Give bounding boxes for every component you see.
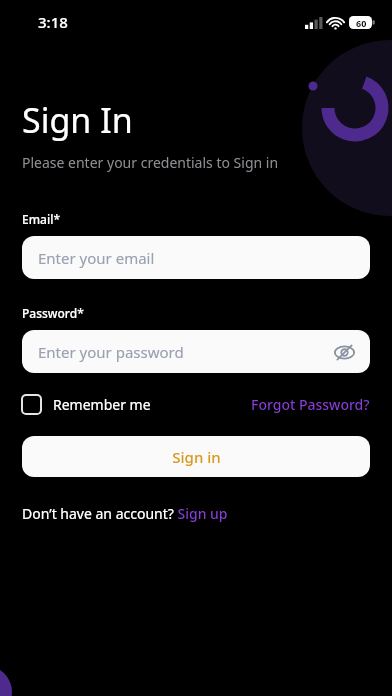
staticText: Enter your email (38, 248, 155, 268)
staticText: Please enter your credentials to Sign in (22, 153, 279, 172)
button[interactable]: Sign in (22, 436, 370, 477)
button[interactable]: Show password (331, 339, 357, 365)
button[interactable]: Enter your email (22, 236, 370, 279)
staticText: 60 (356, 17, 367, 29)
staticText: 3:18 (38, 12, 68, 32)
staticText: Email* (22, 211, 60, 227)
button[interactable]: Don’t have an account? Sign up (22, 504, 228, 523)
staticText: Enter your password (38, 342, 184, 362)
button[interactable]: Remember me (22, 395, 151, 414)
staticText: Sign In (22, 97, 133, 143)
button[interactable]: Enter your password (22, 330, 370, 373)
staticText: Password* (22, 305, 84, 321)
staticText: Remember me (53, 395, 151, 414)
staticText: Forgot Password? (251, 395, 370, 414)
staticText: Don’t have an account? Sign up (22, 504, 228, 523)
button[interactable]: Forgot Password? (251, 395, 370, 414)
staticText: Sign in (172, 447, 221, 467)
